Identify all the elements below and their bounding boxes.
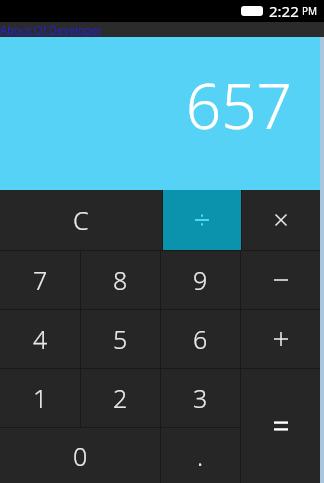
staticText: 7 <box>33 263 48 297</box>
staticText: 0 <box>73 439 88 473</box>
button[interactable]: 3 <box>161 369 240 427</box>
staticText: PM <box>302 4 318 18</box>
button[interactable]: 4 <box>0 310 80 368</box>
staticText: About Of Developer <box>0 22 103 37</box>
button[interactable]: C <box>0 190 162 250</box>
button[interactable]: 2 <box>81 369 160 427</box>
staticText: C <box>73 203 89 237</box>
button[interactable]: 7 <box>0 251 80 309</box>
staticText: 3 <box>193 381 208 415</box>
staticText: 9 <box>193 263 208 297</box>
staticText: 5 <box>113 322 128 356</box>
staticText: 6 <box>193 322 208 356</box>
button[interactable]: Divide <box>163 190 241 250</box>
staticText: 8 <box>113 263 128 297</box>
button[interactable]: 9 <box>161 251 240 309</box>
button[interactable]: 1 <box>0 369 80 427</box>
button[interactable]: Multiply <box>242 190 320 250</box>
button[interactable]: 8 <box>81 251 160 309</box>
staticText: 1 <box>33 381 48 415</box>
staticText: 657 <box>185 63 292 147</box>
button[interactable]: 6 <box>161 310 240 368</box>
button[interactable]: Add <box>241 310 320 368</box>
button[interactable]: About Of Developer <box>0 22 324 37</box>
staticText: 2 <box>113 381 128 415</box>
button[interactable]: . <box>161 428 240 483</box>
staticText: . <box>197 439 204 473</box>
button[interactable]: Subtract <box>241 251 320 309</box>
button[interactable]: 0 <box>0 428 160 483</box>
button[interactable]: Equals <box>241 369 320 483</box>
button[interactable]: 5 <box>81 310 160 368</box>
staticText: 4 <box>33 322 48 356</box>
staticText: 2:22 <box>269 1 299 21</box>
